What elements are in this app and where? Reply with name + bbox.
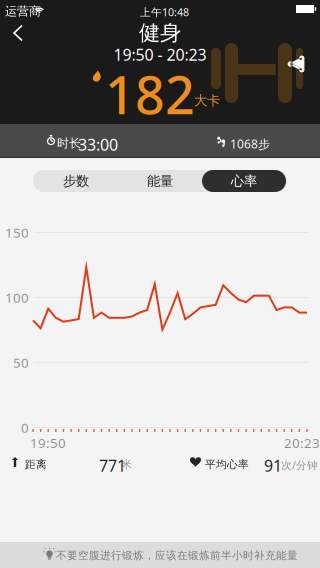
staticText: 时长 — [57, 136, 81, 151]
staticText: 33:00 — [78, 134, 118, 155]
staticText: 距离 — [25, 458, 47, 471]
staticText: 50 — [13, 354, 29, 371]
staticText: 能量 — [147, 173, 173, 189]
staticText: 上午10:48 — [140, 5, 189, 19]
staticText: 健身 — [139, 20, 181, 46]
staticText: 运营商 — [5, 4, 41, 19]
staticText: 182 — [105, 59, 195, 129]
button[interactable]: 步数 — [34, 170, 118, 192]
staticText: 不要空腹进行锻炼，应该在锻炼前半小时补充能量 — [56, 549, 298, 562]
staticText: 平均心率 — [205, 458, 249, 471]
staticText: 91 — [264, 455, 282, 476]
staticText: 771 — [99, 455, 126, 476]
staticText: 心率 — [231, 173, 257, 189]
button[interactable]: 返回 — [0, 19, 36, 47]
staticText: 大卡 — [194, 92, 220, 109]
staticText: 100 — [5, 289, 29, 306]
button[interactable]: 分享 — [278, 47, 314, 81]
staticText: 19:50 - 20:23 — [113, 44, 206, 65]
staticText: 1068步 — [230, 136, 270, 152]
staticText: 步数 — [63, 173, 89, 189]
staticText: 20:23 — [284, 434, 320, 452]
staticText: 150 — [5, 224, 29, 241]
staticText: 0 — [21, 419, 29, 436]
staticText: 19:50 — [30, 434, 66, 452]
staticText: 米 — [121, 458, 132, 471]
button[interactable]: 能量 — [118, 170, 202, 192]
button[interactable]: 心率 — [202, 170, 286, 192]
staticText: 次/分钟 — [281, 458, 318, 472]
